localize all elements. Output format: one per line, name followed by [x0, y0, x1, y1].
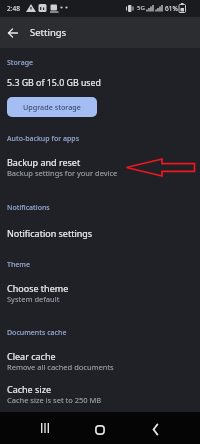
staticText: Notifications [7, 203, 50, 213]
staticText: Notification settings [7, 227, 93, 239]
staticText: Cache size is set to 250 MB [7, 395, 102, 405]
staticText: Auto-backup for apps [7, 134, 80, 144]
staticText: Backup and reset [7, 156, 81, 168]
button[interactable]: Clear cache [0, 345, 200, 375]
staticText: Choose theme [7, 282, 69, 294]
staticText: Remove all cached documents [7, 362, 114, 372]
staticText: 61% [165, 4, 178, 13]
staticText: Settings [30, 26, 67, 39]
button[interactable] [140, 414, 170, 444]
staticText: System default [7, 294, 60, 304]
staticText: Cache size [7, 383, 51, 395]
button[interactable]: Upgrade storage [7, 97, 97, 117]
button[interactable] [2, 22, 24, 44]
staticText: Theme [7, 260, 30, 270]
button[interactable] [30, 413, 60, 443]
button[interactable]: Notification settings [0, 222, 200, 244]
staticText: 2:48 [7, 4, 20, 13]
button[interactable]: Choose theme [0, 277, 200, 307]
staticText: Backup settings for your device [7, 168, 118, 178]
button[interactable] [85, 415, 115, 444]
staticText: Documents cache [7, 328, 67, 338]
staticText: Clear cache [7, 350, 56, 362]
button[interactable]: Cache size [0, 378, 200, 408]
button[interactable]: Backup and reset [0, 150, 200, 180]
staticText: Storage [7, 58, 33, 68]
staticText: 5G [137, 4, 145, 12]
staticText: 5.3 GB of 15.0 GB used [7, 77, 101, 89]
staticText: Upgrade storage [23, 102, 81, 112]
